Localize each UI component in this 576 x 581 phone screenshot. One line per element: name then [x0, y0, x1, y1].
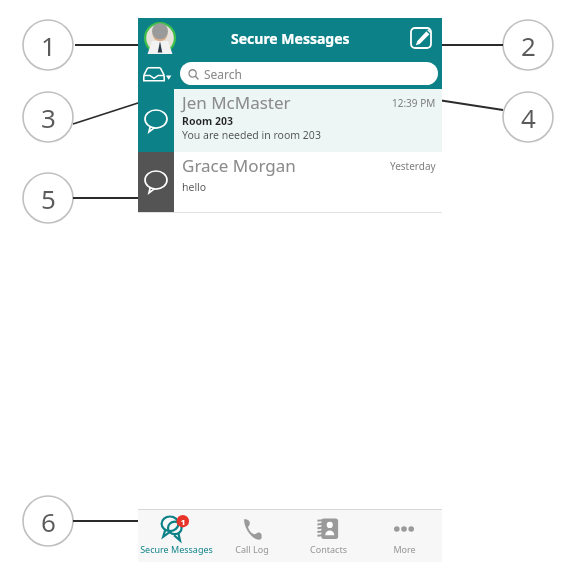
button[interactable]: Call Log	[214, 510, 290, 562]
staticText: 4	[521, 100, 536, 135]
staticText: Call Log	[235, 543, 269, 555]
button[interactable]: Contacts	[290, 510, 366, 562]
staticText: 2	[521, 28, 536, 63]
button[interactable]: Compose	[408, 25, 434, 51]
staticText: 1	[181, 517, 186, 527]
button[interactable]: Inbox folder	[142, 62, 172, 86]
button[interactable]: Jen McMaster	[138, 89, 442, 152]
staticText: 6	[41, 504, 56, 539]
staticText: More	[393, 543, 416, 555]
staticText: Room 203	[182, 114, 233, 128]
button[interactable]: Profile	[144, 22, 176, 54]
staticText: Grace Morgan	[182, 154, 390, 177]
button[interactable]: Search	[180, 62, 438, 85]
staticText: Yesterday	[390, 159, 436, 173]
staticText: You are needed in room 203	[182, 128, 321, 142]
staticText: hello	[182, 180, 207, 194]
staticText: 1	[41, 28, 56, 63]
button[interactable]: Grace Morgan	[138, 152, 442, 212]
button[interactable]: More	[366, 510, 442, 562]
staticText: Secure Messages	[231, 29, 350, 48]
staticText: Contacts	[310, 543, 347, 555]
staticText: 5	[41, 181, 56, 216]
staticText: Jen McMaster	[182, 91, 392, 114]
staticText: 12:39 PM	[392, 96, 436, 110]
staticText: Search	[204, 66, 242, 82]
staticText: 3	[41, 100, 56, 135]
staticText: Secure Messages	[140, 543, 213, 555]
button[interactable]: 1	[138, 510, 214, 562]
